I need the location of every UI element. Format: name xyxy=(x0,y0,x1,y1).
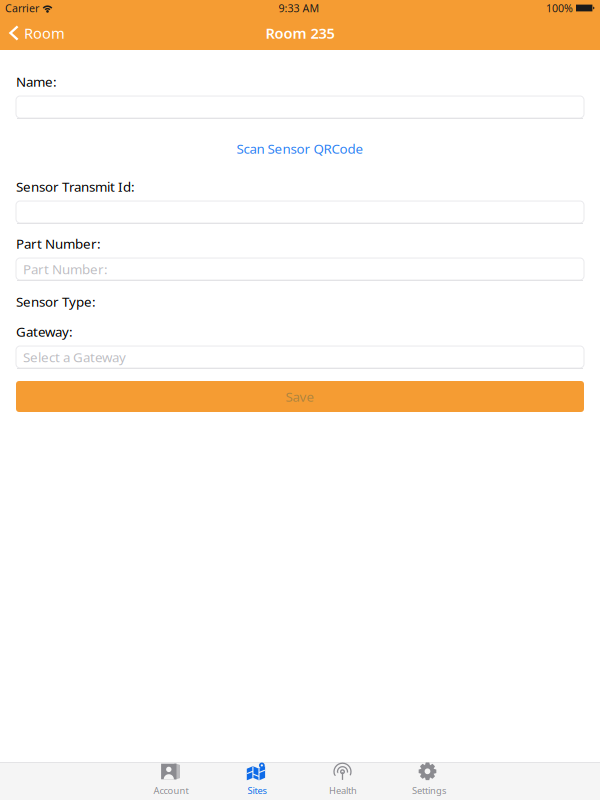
staticText: Name: xyxy=(16,73,57,90)
staticText: Scan Sensor QRCode xyxy=(236,140,363,157)
button[interactable] xyxy=(16,96,584,119)
staticText: Save xyxy=(285,388,314,405)
staticText: Carrier xyxy=(5,1,39,15)
button[interactable]: Select a Gateway xyxy=(16,346,584,369)
staticText: Sensor Type: xyxy=(16,293,96,310)
staticText: Part Number: xyxy=(16,235,101,252)
staticText: Select a Gateway xyxy=(23,348,126,366)
button[interactable]: Sites xyxy=(214,762,300,800)
button[interactable]: Account xyxy=(128,762,214,800)
staticText: Sensor Transmit Id: xyxy=(16,178,135,195)
staticText: Health xyxy=(329,784,357,797)
button[interactable]: Room xyxy=(0,16,73,50)
staticText: Room 235 xyxy=(265,23,334,43)
staticText: Sites xyxy=(247,784,266,797)
staticText: 9:33 AM xyxy=(278,1,319,15)
staticText: Account xyxy=(153,784,188,797)
staticText: Part Number: xyxy=(23,260,108,278)
button[interactable] xyxy=(16,201,584,224)
button[interactable]: Part Number: xyxy=(16,258,584,281)
button[interactable]: Settings xyxy=(386,762,472,800)
staticText: 100% xyxy=(546,1,573,15)
button[interactable]: Scan Sensor QRCode xyxy=(16,143,584,154)
staticText: Room xyxy=(24,23,65,43)
button[interactable]: Health xyxy=(300,762,386,800)
staticText: Gateway: xyxy=(16,323,73,340)
staticText: Settings xyxy=(412,784,446,797)
button[interactable]: Save xyxy=(16,381,584,412)
